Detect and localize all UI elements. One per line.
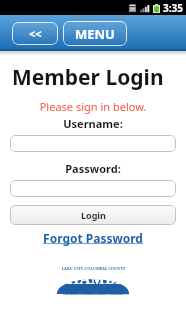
button[interactable]: MENU — [63, 21, 127, 46]
button[interactable]: Back — [12, 22, 58, 45]
staticText: Password: — [0, 161, 186, 176]
staticText: LAKE CITY-COLUMBIA COUNTY — [61, 266, 126, 271]
staticText: Member Login — [12, 63, 164, 92]
button[interactable]: Text field — [10, 180, 176, 197]
button[interactable]: Login — [10, 205, 176, 225]
staticText: PROMOTE • ENGAGE • LEAD • PROSPER — [63, 292, 123, 296]
staticText: MENU — [75, 25, 115, 43]
staticText: CHAMBER — [57, 268, 129, 298]
button[interactable]: Forgot Password — [0, 230, 186, 246]
staticText: << — [29, 26, 42, 41]
staticText: Login — [81, 209, 106, 221]
staticText: 3:35 — [163, 1, 183, 15]
staticText: Please sign in below. — [0, 99, 186, 114]
staticText: Username: — [0, 116, 186, 131]
button[interactable]: Text field — [10, 135, 176, 152]
